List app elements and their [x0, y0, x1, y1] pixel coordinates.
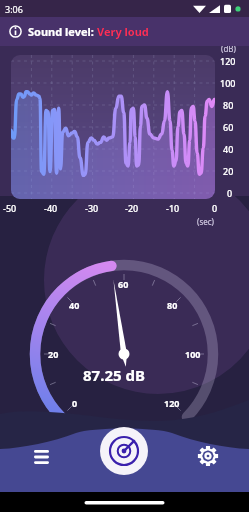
staticText: (dB) — [221, 43, 236, 54]
staticText: 80 — [223, 99, 234, 111]
staticText: -40 — [44, 202, 58, 214]
staticText: 100 — [185, 348, 201, 360]
staticText: 120 — [164, 397, 180, 409]
staticText: -30 — [85, 202, 99, 214]
button[interactable]: Settings — [194, 442, 222, 470]
staticText: 40 — [223, 143, 234, 155]
staticText: 80 — [167, 299, 178, 311]
staticText: -10 — [166, 202, 180, 214]
button[interactable]: Sound level: — [0, 17, 249, 46]
staticText: 87.25 dB — [83, 365, 145, 385]
staticText: 60 — [118, 278, 129, 290]
staticText: 0 — [212, 202, 218, 214]
staticText: (sec) — [197, 216, 214, 227]
staticText: 100 — [220, 77, 236, 89]
staticText: -20 — [125, 202, 139, 214]
staticText: 60 — [223, 121, 234, 133]
staticText: Very loud — [97, 24, 149, 39]
staticText: Sound level: — [28, 24, 97, 39]
staticText: -50 — [3, 202, 17, 214]
staticText: 20 — [48, 348, 59, 360]
staticText: 0 — [227, 187, 233, 199]
staticText: 40 — [69, 299, 80, 311]
button[interactable]: Menu — [27, 442, 55, 470]
staticText: 120 — [220, 55, 236, 67]
staticText: 0 — [72, 397, 78, 409]
button[interactable]: Measure — [100, 427, 148, 475]
staticText: 3:06 — [5, 3, 23, 15]
staticText: 20 — [223, 165, 234, 177]
